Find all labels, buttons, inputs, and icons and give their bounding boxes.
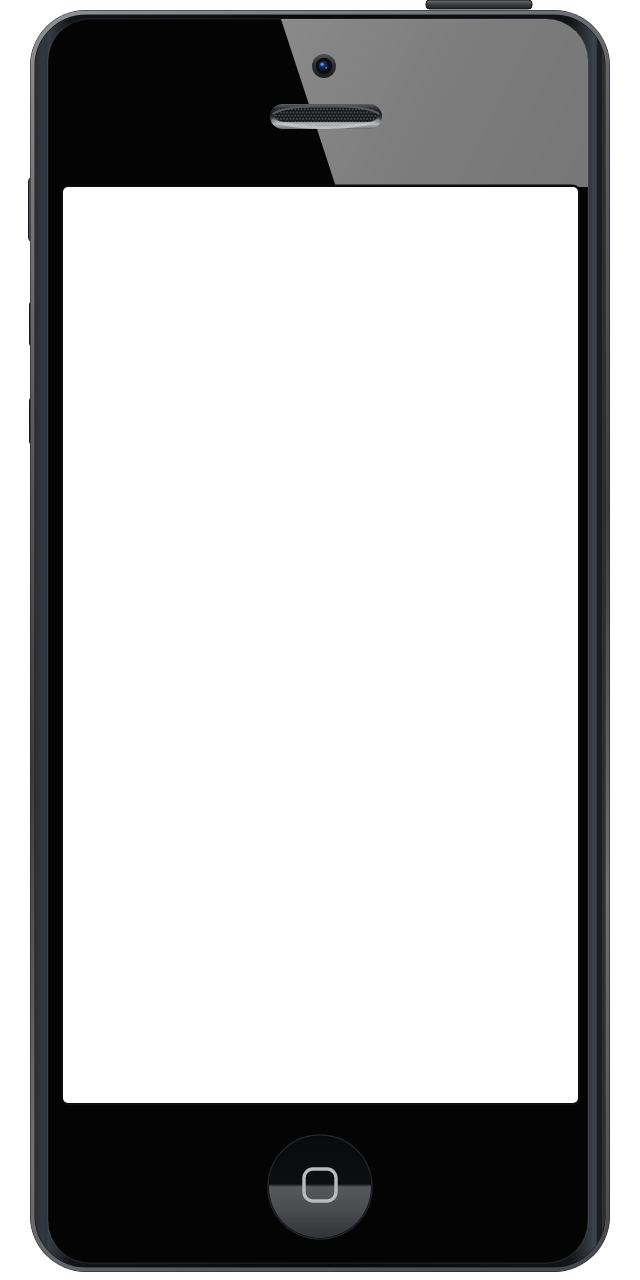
button[interactable]: Smartphone device mockup	[0, 0, 640, 1280]
